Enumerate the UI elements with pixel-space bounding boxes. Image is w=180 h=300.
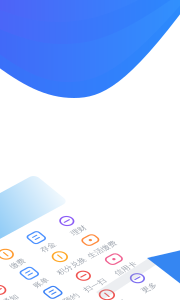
staticText: 订单 bbox=[18, 84, 34, 93]
staticText: 保险 bbox=[18, 180, 34, 189]
staticText: 存金 bbox=[90, 84, 106, 93]
